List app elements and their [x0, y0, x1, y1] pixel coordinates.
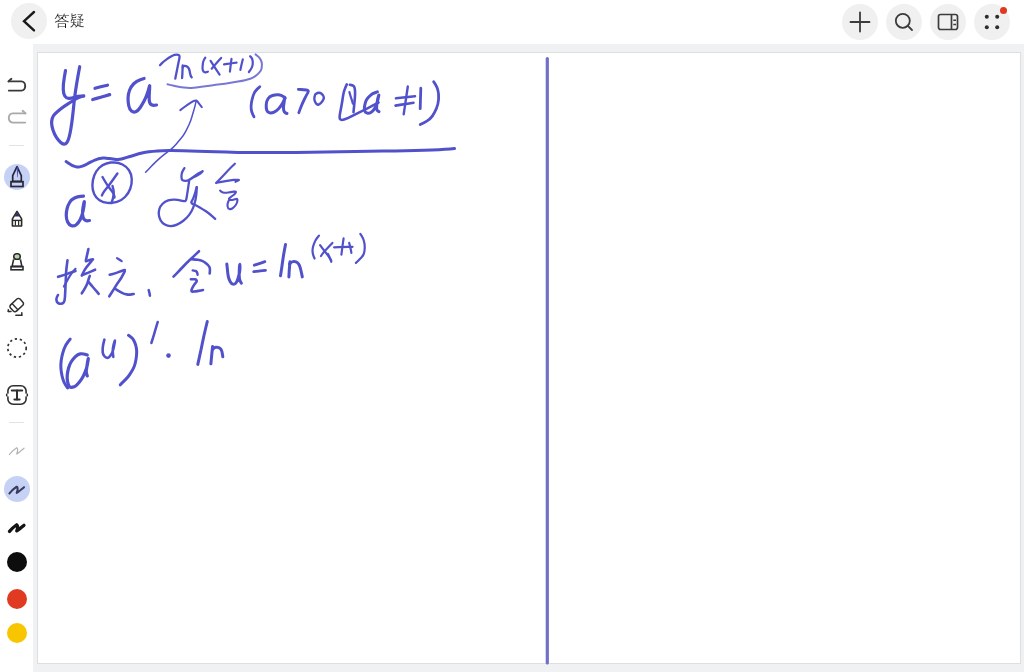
- button[interactable]: Red ink: [0, 582, 33, 616]
- button[interactable]: Medium stroke: [0, 472, 33, 506]
- staticText: 答疑: [54, 11, 85, 31]
- button[interactable]: Text box: [0, 378, 33, 412]
- button[interactable]: Highlighter: [0, 244, 33, 278]
- button[interactable]: Lasso select: [0, 331, 33, 365]
- button[interactable]: Thin stroke: [0, 433, 33, 467]
- button[interactable]: Redo: [0, 101, 33, 135]
- button[interactable]: Black ink: [0, 545, 33, 579]
- button[interactable]: Yellow ink: [0, 616, 33, 650]
- button[interactable]: More options: [974, 4, 1010, 40]
- button[interactable]: Undo: [0, 69, 33, 103]
- button[interactable]: Toggle side panel: [930, 4, 966, 40]
- button[interactable]: Search: [886, 4, 922, 40]
- button[interactable]: Fountain pen: [0, 160, 33, 194]
- button[interactable]: Thick stroke: [0, 510, 33, 544]
- button[interactable]: Eraser: [0, 290, 33, 324]
- button[interactable]: Back: [11, 3, 47, 39]
- button[interactable]: Add page: [842, 4, 878, 40]
- button[interactable]: Pencil: [0, 202, 33, 236]
